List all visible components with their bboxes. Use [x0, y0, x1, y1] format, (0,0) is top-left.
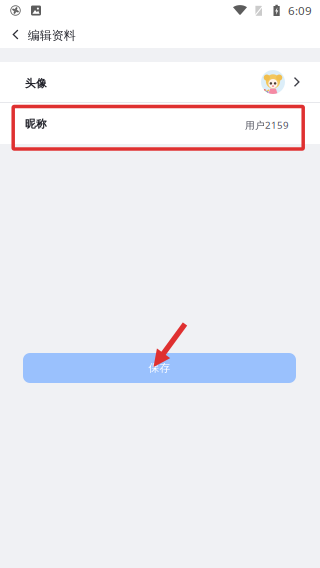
staticText: 用户2159	[245, 118, 289, 132]
staticText: 6:09	[288, 3, 312, 18]
button[interactable]: Back	[0, 20, 28, 48]
button[interactable]: 昵称	[0, 103, 320, 144]
button[interactable]: 头像	[0, 62, 320, 102]
staticText: 头像	[25, 77, 47, 90]
button[interactable]: 保存	[23, 353, 296, 383]
staticText: 编辑资料	[28, 28, 76, 43]
staticText: 昵称	[25, 117, 47, 131]
staticText: 保存	[148, 361, 170, 375]
